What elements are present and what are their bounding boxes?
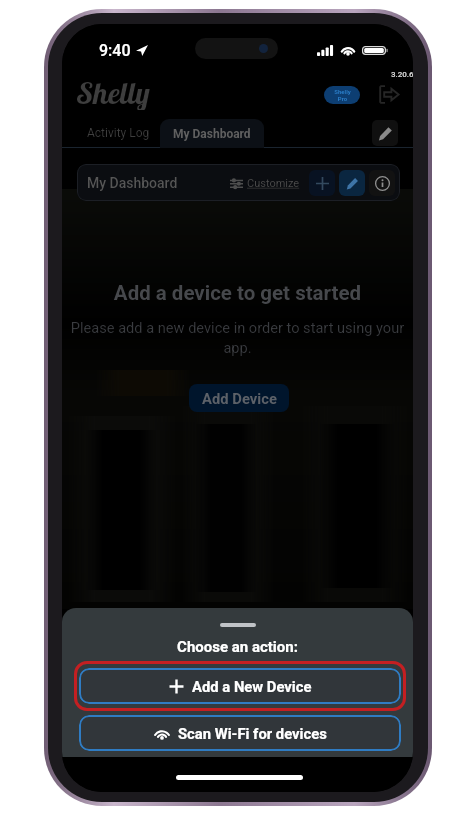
- button[interactable]: Edit: [372, 120, 398, 146]
- button[interactable]: Scan Wi-Fi for devices: [79, 715, 401, 751]
- button[interactable]: Info: [369, 170, 395, 196]
- staticText: Add a New Device: [192, 678, 312, 695]
- staticText: Add a device to get started: [62, 281, 413, 305]
- staticText: Choose an action:: [62, 638, 413, 656]
- staticText: My Dashboard: [173, 127, 251, 141]
- button[interactable]: Activity Log: [76, 119, 160, 147]
- staticText: Add Device: [202, 390, 277, 407]
- staticText: My Dashboard: [87, 175, 178, 191]
- staticText: 3.20.6: [391, 70, 413, 79]
- button[interactable]: Edit dashboard: [339, 170, 365, 196]
- button[interactable]: Add widget: [309, 170, 335, 196]
- staticText: 9:40: [99, 41, 131, 60]
- button[interactable]: My Dashboard: [160, 119, 264, 148]
- staticText: Activity Log: [87, 126, 150, 140]
- button[interactable]: Add a New Device: [79, 668, 401, 704]
- staticText: Customize: [247, 177, 300, 190]
- button[interactable]: Customize: [228, 177, 302, 190]
- button[interactable]: Add Device: [189, 384, 289, 412]
- button[interactable]: Log out: [379, 85, 399, 104]
- staticText: Scan Wi-Fi for devices: [178, 725, 327, 742]
- staticText: Shelly Pro: [334, 88, 351, 102]
- button[interactable]: Shelly: [77, 74, 167, 110]
- staticText: Shelly: [77, 74, 150, 110]
- staticText: Please add a new device in order to star…: [62, 319, 413, 356]
- button[interactable]: Shelly Pro: [324, 86, 360, 104]
